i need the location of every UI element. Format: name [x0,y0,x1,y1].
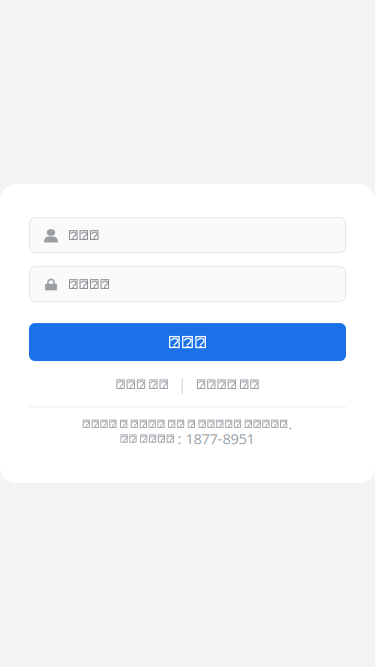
button[interactable] [197,373,259,395]
button[interactable] [29,217,346,253]
staticText: | [178,374,187,395]
button[interactable] [29,323,346,361]
staticText: . [288,414,292,433]
button[interactable] [29,266,346,302]
staticText: : 1877-8951 [177,429,254,448]
button[interactable] [116,373,168,395]
